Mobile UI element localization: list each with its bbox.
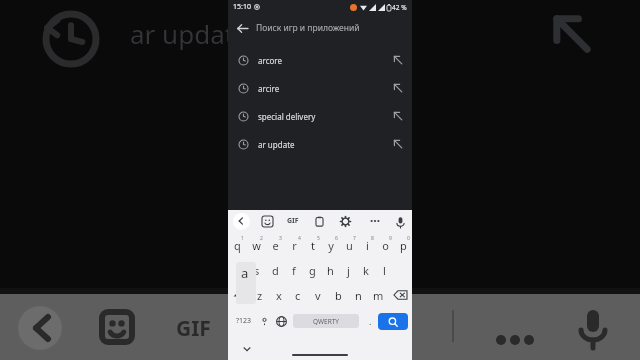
staticText: z bbox=[257, 288, 263, 303]
button[interactable]: special delivery bbox=[228, 102, 412, 130]
staticText: s bbox=[254, 263, 260, 278]
staticText: p bbox=[400, 238, 407, 253]
button[interactable]: s bbox=[247, 259, 266, 281]
button[interactable]: w bbox=[247, 234, 266, 256]
button[interactable]: . bbox=[362, 309, 378, 333]
button[interactable]: m bbox=[368, 284, 388, 306]
button[interactable]: Change language bbox=[272, 309, 290, 333]
staticText: r bbox=[292, 238, 297, 253]
button[interactable]: c bbox=[288, 284, 308, 306]
staticText: special delivery bbox=[258, 111, 316, 122]
button[interactable]: x bbox=[269, 284, 288, 306]
button[interactable]: arcore bbox=[228, 46, 412, 74]
staticText: c bbox=[295, 288, 301, 303]
button[interactable]: p bbox=[394, 234, 412, 256]
button[interactable]: GIF bbox=[280, 210, 306, 232]
button[interactable]: l bbox=[375, 259, 393, 281]
staticText: k bbox=[363, 263, 369, 278]
staticText: g bbox=[309, 263, 316, 278]
button[interactable]: Insert arcire bbox=[384, 74, 412, 102]
staticText: QWERTY bbox=[313, 317, 340, 326]
button[interactable]: u bbox=[340, 234, 358, 256]
button[interactable]: Shift bbox=[228, 284, 250, 306]
button[interactable]: j bbox=[339, 259, 357, 281]
staticText: 3 bbox=[279, 235, 282, 242]
button[interactable]: q bbox=[228, 234, 247, 256]
staticText: 5 bbox=[317, 235, 320, 242]
button[interactable]: Clipboard bbox=[306, 210, 332, 232]
staticText: 42 % bbox=[392, 3, 407, 12]
button[interactable]: ?123 bbox=[232, 309, 256, 333]
button[interactable]: Insert ar update bbox=[384, 130, 412, 158]
staticText: t bbox=[311, 238, 315, 253]
button[interactable]: QWERTY bbox=[293, 314, 359, 328]
button[interactable]: k bbox=[357, 259, 375, 281]
button[interactable]: Emoji bbox=[256, 309, 272, 333]
other: Voice input bbox=[578, 306, 608, 336]
staticText: 9 bbox=[389, 235, 392, 242]
staticText: b bbox=[335, 288, 342, 303]
staticText: arcore bbox=[258, 55, 282, 66]
button[interactable]: Back bbox=[228, 14, 412, 42]
button[interactable]: v bbox=[308, 284, 328, 306]
staticText: arcire bbox=[258, 83, 280, 94]
button[interactable]: t bbox=[304, 234, 322, 256]
staticText: y bbox=[328, 238, 334, 253]
staticText: h bbox=[327, 263, 334, 278]
button[interactable]: f bbox=[285, 259, 303, 281]
button[interactable]: Stickers bbox=[254, 210, 280, 232]
staticText: ar update bbox=[258, 139, 295, 150]
button[interactable]: Backspace bbox=[388, 284, 412, 306]
button[interactable]: y bbox=[322, 234, 340, 256]
button[interactable]: h bbox=[321, 259, 339, 281]
staticText: 7 bbox=[353, 235, 356, 242]
button[interactable]: z bbox=[250, 284, 269, 306]
button[interactable]: arcire bbox=[228, 74, 412, 102]
button[interactable]: o bbox=[376, 234, 394, 256]
staticText: e bbox=[272, 238, 279, 253]
staticText: m bbox=[373, 288, 384, 303]
staticText: o bbox=[382, 238, 389, 253]
staticText: ?123 bbox=[236, 316, 252, 326]
button[interactable]: Back bbox=[228, 210, 254, 232]
staticText: 1 bbox=[241, 235, 244, 242]
staticText: l bbox=[383, 263, 386, 278]
staticText: a bbox=[241, 264, 249, 282]
staticText: f bbox=[292, 263, 296, 278]
button[interactable]: ar update bbox=[228, 130, 412, 158]
staticText: . bbox=[369, 315, 372, 327]
staticText: u bbox=[346, 238, 353, 253]
button[interactable]: r bbox=[285, 234, 304, 256]
staticText: w bbox=[252, 238, 261, 253]
staticText: v bbox=[315, 288, 321, 303]
staticText: 0 bbox=[407, 235, 410, 242]
button[interactable]: Back bbox=[228, 14, 256, 42]
button[interactable]: g bbox=[303, 259, 321, 281]
button[interactable]: Voice input bbox=[388, 210, 412, 232]
button[interactable]: Hide keyboard bbox=[240, 342, 254, 356]
staticText: Поиск игр и приложений bbox=[256, 22, 360, 34]
button[interactable]: b bbox=[328, 284, 348, 306]
button[interactable]: Settings bbox=[332, 210, 358, 232]
button[interactable]: Search bbox=[378, 313, 408, 330]
button[interactable]: Insert arcore bbox=[384, 46, 412, 74]
staticText: i bbox=[366, 238, 369, 253]
staticText: d bbox=[272, 263, 279, 278]
button[interactable]: Insert special delivery bbox=[384, 102, 412, 130]
button[interactable]: More options bbox=[362, 210, 388, 232]
staticText: GIF bbox=[176, 314, 211, 343]
staticText: GIF bbox=[287, 216, 299, 226]
staticText: ar update bbox=[130, 16, 249, 51]
staticText: 15:10 bbox=[233, 2, 251, 12]
staticText: 2 bbox=[260, 235, 263, 242]
staticText: 6 bbox=[335, 235, 338, 242]
staticText: n bbox=[355, 288, 362, 303]
staticText: q bbox=[234, 238, 241, 253]
button[interactable]: d bbox=[266, 259, 285, 281]
button[interactable]: n bbox=[348, 284, 368, 306]
button[interactable]: e bbox=[266, 234, 285, 256]
staticText: x bbox=[276, 288, 282, 303]
button[interactable]: i bbox=[358, 234, 376, 256]
staticText: j bbox=[347, 263, 350, 278]
staticText: 8 bbox=[371, 235, 374, 242]
